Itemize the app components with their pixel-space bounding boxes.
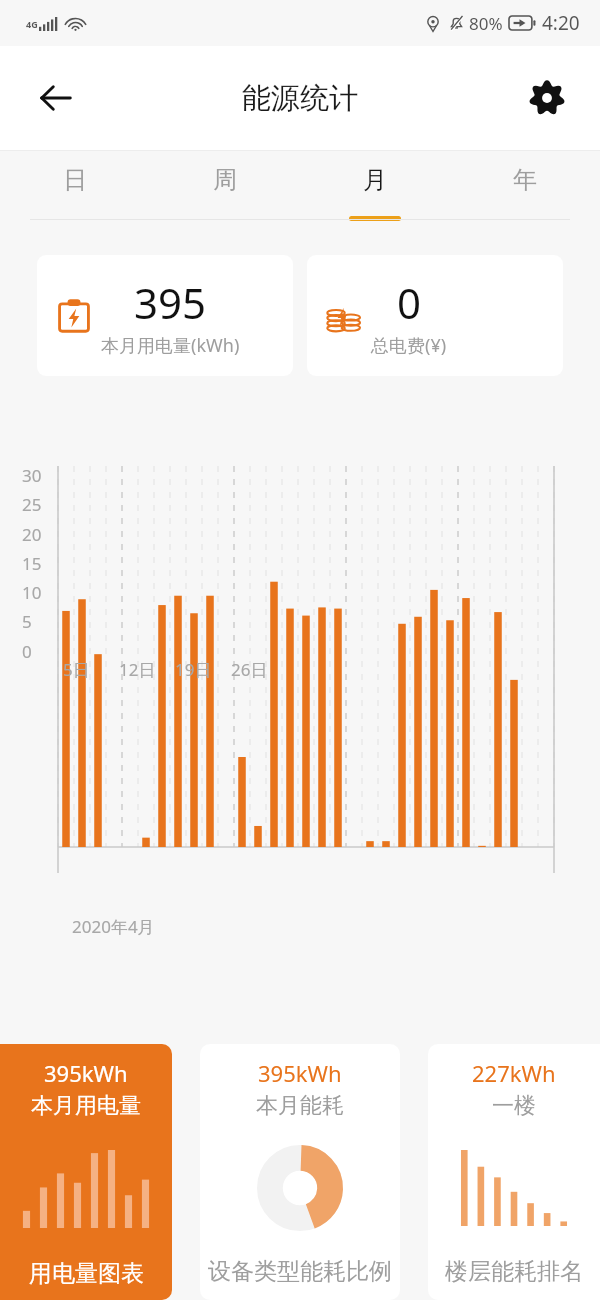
button[interactable]: 0 [307,255,563,376]
staticText: 395kWh [44,1058,128,1088]
staticText: 2020年4月 [72,915,155,938]
staticText: 本月用电量(kWh) [101,333,240,358]
staticText: 19日 [175,658,212,681]
staticText: 5 [22,610,32,633]
staticText: 设备类型能耗比例 [208,1257,392,1286]
staticText: 15 [22,552,42,575]
staticText: 用电量图表 [29,1259,144,1288]
staticText: 30 [22,464,42,487]
staticText: 20 [22,523,42,546]
staticText: 日 [63,165,87,195]
staticText: 80% [469,12,503,35]
staticText: 本月能耗 [256,1092,344,1120]
button[interactable]: 395kWh [0,1044,172,1300]
button[interactable]: 227kWh [428,1044,600,1300]
staticText: 0 [397,274,422,331]
staticText: 本月用电量 [31,1092,141,1120]
staticText: 一楼 [492,1092,536,1120]
staticText: 395 [134,274,207,331]
staticText: 395kWh [258,1058,342,1088]
staticText: 4G [26,18,38,30]
staticText: 楼层能耗排名 [445,1257,583,1286]
staticText: 周 [213,165,237,195]
button[interactable]: 395 [37,255,293,376]
button[interactable]: 月 [300,151,450,229]
staticText: 12日 [119,658,156,681]
button[interactable]: 周 [150,151,300,229]
staticText: 26日 [231,658,268,681]
button[interactable]: 日 [0,151,150,229]
button[interactable]: Settings [520,71,574,125]
staticText: 227kWh [472,1058,556,1088]
staticText: 25 [22,493,42,516]
staticText: 10 [22,581,42,604]
button[interactable]: 年 [450,151,600,229]
button[interactable]: 395kWh [200,1044,400,1300]
button[interactable]: Back [28,70,84,126]
staticText: 5日 [63,658,90,681]
staticText: 年 [513,165,537,195]
staticText: 0 [22,640,32,663]
staticText: 4:20 [542,10,580,36]
staticText: 月 [363,165,387,195]
staticText: 总电费(¥) [371,333,447,358]
staticText: 能源统计 [242,80,358,117]
